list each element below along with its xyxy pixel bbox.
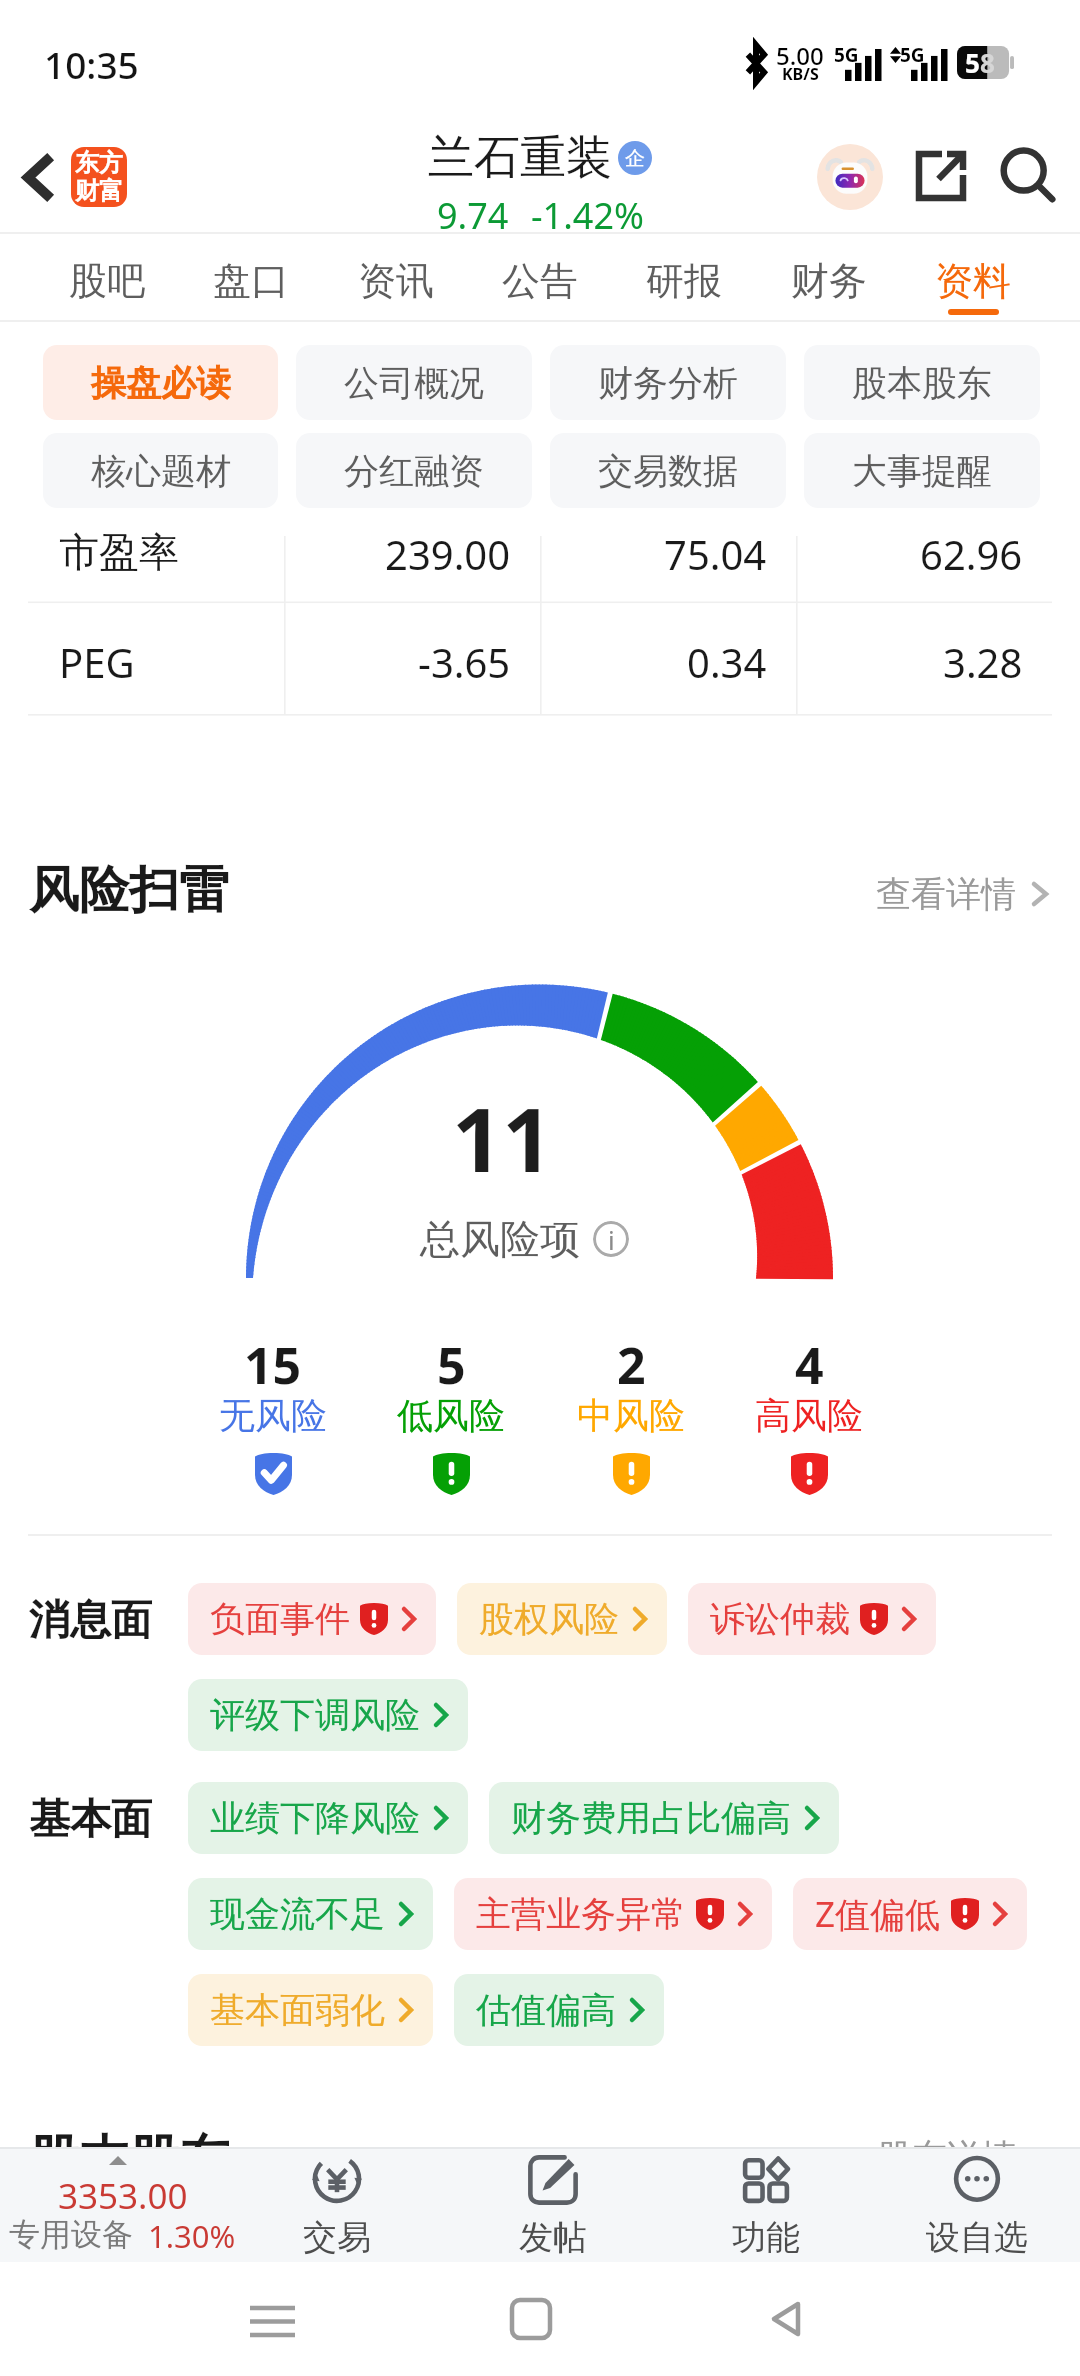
button[interactable]: Recent apps: [227, 2274, 317, 2364]
staticText: 9.74: [437, 191, 509, 240]
button[interactable]: 2: [541, 1331, 721, 1495]
staticText: 诉讼仲裁: [710, 1597, 850, 1641]
button[interactable]: 公告: [502, 234, 578, 322]
button[interactable]: 股权风险: [457, 1583, 667, 1655]
button[interactable]: AI assistant: [817, 144, 883, 210]
button[interactable]: Back: [740, 2274, 830, 2364]
button[interactable]: 大事提醒: [804, 433, 1040, 508]
staticText: 大事提醒: [852, 449, 992, 493]
staticText: 设自选: [926, 2216, 1028, 2259]
button[interactable]: 财务: [791, 234, 867, 322]
button[interactable]: 诉讼仲裁: [688, 1583, 936, 1655]
button[interactable]: 研报: [646, 234, 722, 322]
staticText: 专用设备: [9, 2215, 133, 2254]
staticText: 业绩下降风险: [210, 1796, 420, 1840]
staticText: 股本股东: [852, 361, 992, 405]
staticText: 10:35: [44, 39, 139, 89]
staticText: -3.65: [418, 635, 511, 689]
button[interactable]: 评级下调风险: [188, 1679, 468, 1751]
staticText: 5: [437, 1331, 466, 1399]
button[interactable]: 现金流不足: [188, 1878, 433, 1950]
staticText: 股东详情: [877, 2135, 1017, 2154]
staticText: 5: [965, 45, 980, 78]
staticText: 公告: [502, 257, 578, 305]
button[interactable]: 盘口: [213, 234, 289, 322]
staticText: 市盈率: [59, 527, 179, 577]
staticText: 75.04: [664, 527, 767, 581]
staticText: 3353.00: [58, 2172, 188, 2220]
staticText: 估值偏高: [476, 1988, 616, 2032]
button[interactable]: 核心题材: [43, 433, 278, 508]
button[interactable]: 基本面弱化: [188, 1974, 433, 2046]
staticText: 财富: [75, 176, 123, 206]
staticText: 公司概况: [344, 361, 484, 405]
staticText: 功能: [732, 2216, 800, 2259]
staticText: 4: [795, 1331, 824, 1399]
staticText: 股吧: [69, 257, 145, 305]
button[interactable]: 交易: [231, 2147, 443, 2262]
button[interactable]: 资讯: [358, 234, 434, 322]
staticText: 15: [244, 1331, 302, 1399]
staticText: 基本面: [29, 1794, 152, 1846]
staticText: 基本面弱化: [210, 1988, 385, 2032]
staticText: 风险扫雷: [29, 859, 229, 922]
staticText: 盘口: [213, 257, 289, 305]
staticText: PEG: [59, 635, 135, 689]
staticText: 资料: [935, 257, 1011, 305]
button[interactable]: 查看详情: [870, 860, 1054, 928]
button[interactable]: 资料: [935, 234, 1011, 322]
staticText: 查看详情: [876, 872, 1016, 916]
staticText: 交易数据: [598, 449, 738, 493]
staticText: Z值偏低: [815, 1890, 941, 1938]
button[interactable]: 财务费用占比偏高: [489, 1782, 839, 1854]
staticText: 研报: [646, 257, 722, 305]
button[interactable]: Back: [0, 132, 74, 218]
staticText: 交易: [303, 2216, 371, 2259]
staticText: 股本股东: [29, 2128, 229, 2147]
button[interactable]: 股本股东: [804, 345, 1040, 420]
button[interactable]: 主营业务异常: [454, 1878, 772, 1950]
staticText: 财务费用占比偏高: [511, 1796, 791, 1840]
staticText: 东方: [75, 148, 123, 178]
button[interactable]: 股吧: [69, 234, 145, 322]
staticText: 8: [980, 45, 995, 78]
staticText: 中风险: [577, 1393, 685, 1438]
staticText: 财务分析: [598, 361, 738, 405]
button[interactable]: 操盘必读: [43, 345, 278, 420]
staticText: 2: [617, 1331, 646, 1399]
button[interactable]: 分红融资: [296, 433, 532, 508]
button[interactable]: 估值偏高: [454, 1974, 664, 2046]
button[interactable]: 3353.00: [0, 2147, 231, 2262]
staticText: 239.00: [385, 527, 511, 581]
button[interactable]: 负面事件: [188, 1583, 436, 1655]
staticText: 高风险: [755, 1393, 863, 1438]
staticText: 5G: [834, 42, 859, 68]
button[interactable]: 15: [183, 1331, 363, 1495]
staticText: 主营业务异常: [476, 1892, 686, 1936]
button[interactable]: 设自选: [871, 2147, 1080, 2262]
button[interactable]: 东方: [71, 147, 127, 207]
button[interactable]: Search: [985, 133, 1071, 219]
button[interactable]: Home: [486, 2274, 576, 2364]
staticText: 现金流不足: [210, 1892, 385, 1936]
button[interactable]: 财务分析: [550, 345, 786, 420]
staticText: 低风险: [397, 1393, 505, 1438]
button[interactable]: 业绩下降风险: [188, 1782, 468, 1854]
staticText: i: [608, 1222, 615, 1257]
button[interactable]: 功能: [660, 2147, 872, 2262]
staticText: 1.30%: [148, 2215, 236, 2257]
staticText: 11: [452, 1078, 553, 1198]
staticText: 核心题材: [91, 449, 231, 493]
staticText: 0.34: [687, 635, 767, 689]
button[interactable]: 4: [719, 1331, 899, 1495]
staticText: 股权风险: [479, 1597, 619, 1641]
button[interactable]: Share: [898, 133, 984, 219]
button[interactable]: 公司概况: [296, 345, 532, 420]
staticText: KB/S: [782, 63, 819, 85]
button[interactable]: 交易数据: [550, 433, 786, 508]
button[interactable]: Z值偏低: [793, 1878, 1027, 1950]
staticText: 兰石重装: [428, 129, 612, 187]
staticText: 发帖: [519, 2216, 587, 2259]
button[interactable]: 5: [361, 1331, 541, 1495]
button[interactable]: 发帖: [447, 2147, 659, 2262]
